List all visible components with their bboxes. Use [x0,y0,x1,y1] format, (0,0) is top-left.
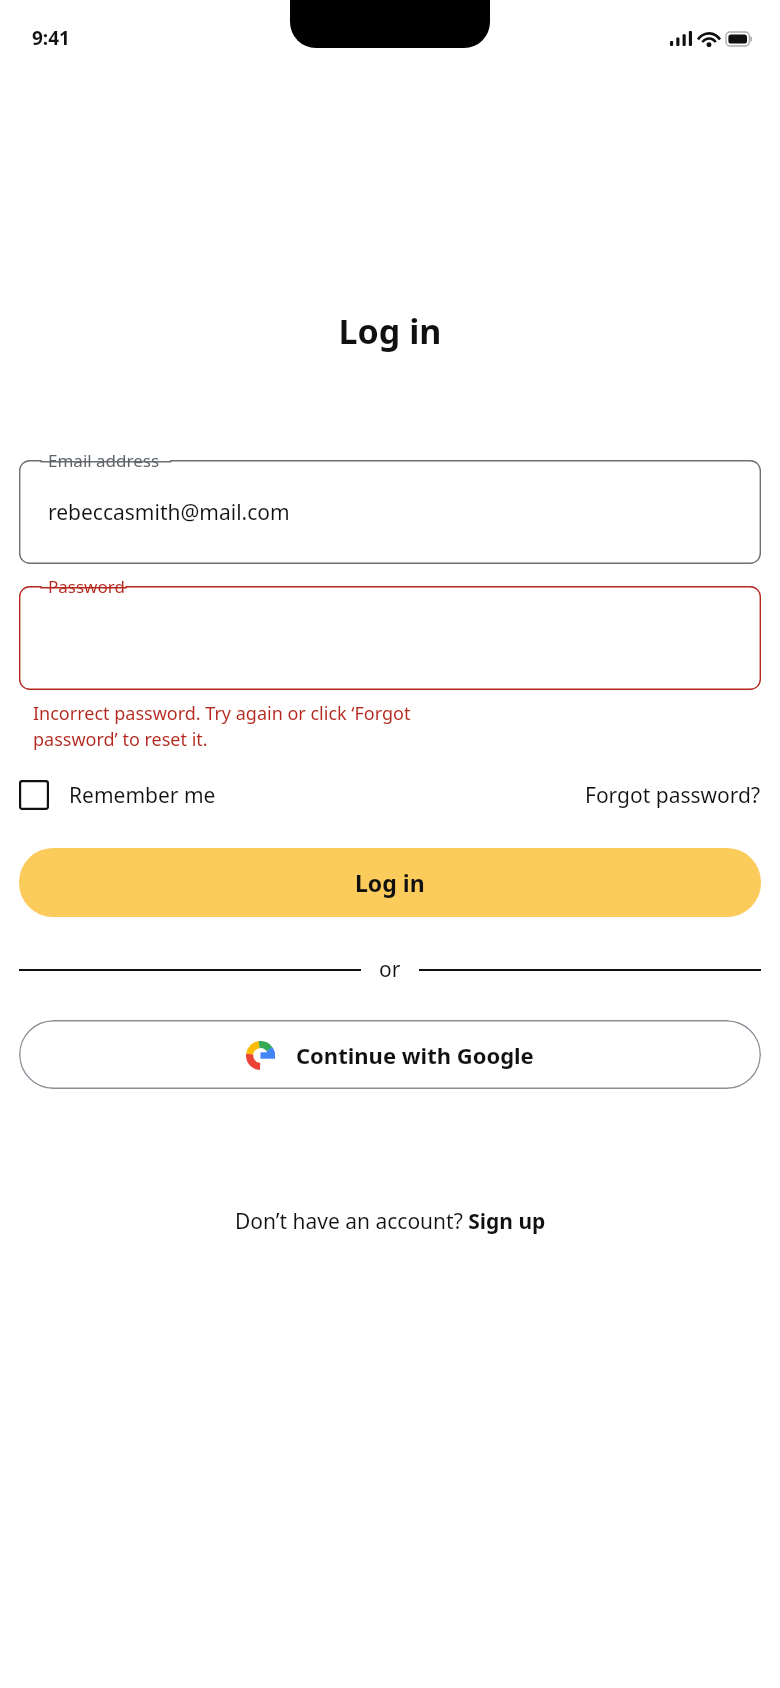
staticText: Remember me [69,781,216,810]
button[interactable]: Remember me [19,780,216,810]
button[interactable]: Email address [19,460,761,564]
button[interactable]: Continue with Google [19,1020,761,1089]
staticText: Log in [0,308,780,354]
staticText: Forgot password? [585,781,761,810]
button[interactable]: Don’t have an account? Sign up [235,1207,546,1236]
staticText: rebeccasmith@mail.com [48,498,290,527]
staticText: Email address [48,449,160,472]
staticText: 9:41 [32,25,70,51]
staticText: Password [48,575,125,598]
button[interactable]: Log in [19,848,761,917]
button[interactable]: Forgot password? [585,781,761,810]
staticText: Continue with Google [296,1040,534,1070]
staticText: Log in [355,867,425,898]
staticText: or [379,955,401,984]
staticText: Incorrect password. Try again or click ‘… [33,701,411,752]
staticText: Don’t have an account? Sign up [235,1207,546,1236]
button[interactable]: Password [19,586,761,690]
